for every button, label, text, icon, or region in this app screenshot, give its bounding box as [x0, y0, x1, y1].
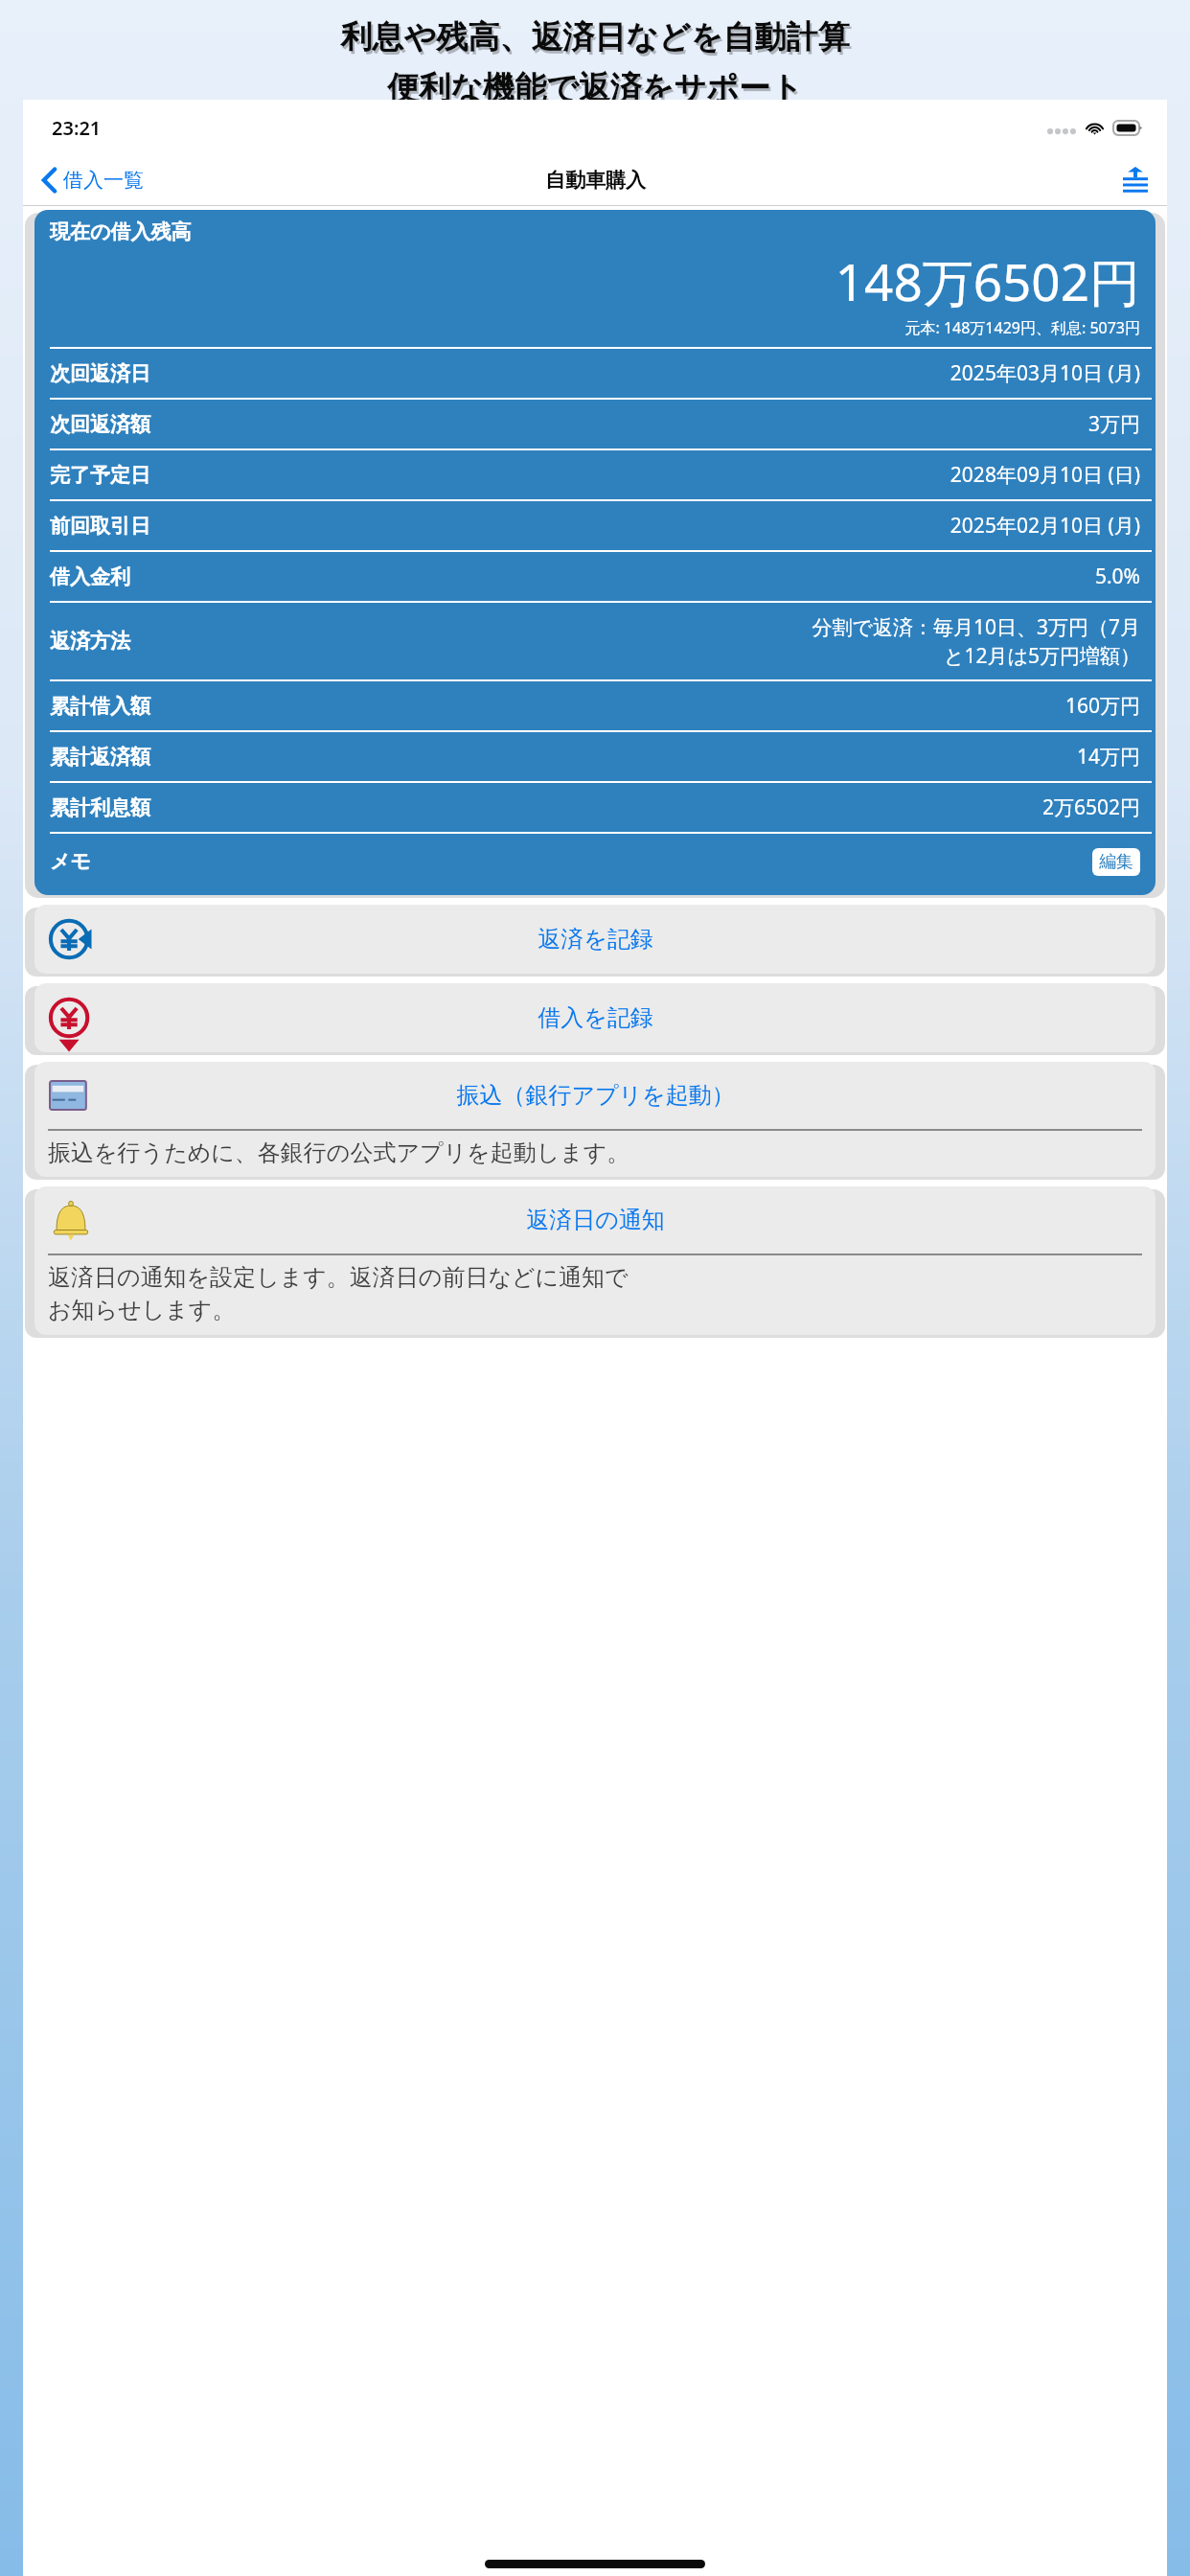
staticText: メモ [50, 849, 91, 874]
button[interactable]: 累計返済額 [34, 732, 1156, 781]
staticText: 2028年09月10日 (日) [160, 461, 1140, 489]
staticText: 編集 [1099, 851, 1133, 873]
staticText: 振込を行うために、各銀行の公式アプリを起動します。 [48, 1138, 1148, 1167]
staticText: 返済日の通知 [526, 1206, 665, 1234]
button[interactable]: 借入金利 [34, 552, 1156, 601]
staticText: 便利な機能で返済をサポート [387, 68, 803, 108]
staticText: 完了予定日 [50, 463, 150, 488]
staticText: 次回返済日 [50, 361, 150, 386]
button[interactable]: 共有 [1104, 161, 1167, 199]
staticText: 利息や残高、返済日などを自動計算 [340, 17, 850, 57]
staticText: 2025年02月10日 (月) [160, 512, 1140, 540]
button[interactable]: 借入を記録 [34, 983, 1156, 1052]
staticText: 振込（銀行アプリを起動） [456, 1081, 735, 1110]
button[interactable]: 返済日の通知 [34, 1186, 1156, 1335]
button[interactable]: 前回取引日 [34, 501, 1156, 550]
staticText: 2万6502円 [160, 793, 1140, 821]
button[interactable]: 次回返済額 [34, 400, 1156, 448]
staticText: 2025年03月10日 (月) [160, 359, 1140, 387]
button[interactable]: 返済方法 [34, 603, 1156, 679]
button[interactable]: 借入一覧 [23, 164, 151, 196]
staticText: 148万6502円 [34, 246, 1140, 315]
staticText: 借入金利 [50, 564, 130, 589]
button[interactable]: 次回返済日 [34, 349, 1156, 398]
staticText: 累計利息額 [50, 795, 150, 820]
staticText: 便利な機能で返済をサポート [389, 71, 805, 111]
staticText: 返済を記録 [538, 925, 653, 954]
button[interactable]: 累計借入額 [34, 681, 1156, 730]
button[interactable]: 現在の借入残高 [34, 210, 1156, 895]
staticText: 累計返済額 [50, 745, 150, 770]
staticText: 前回取引日 [50, 514, 150, 539]
staticText: 3万円 [160, 410, 1140, 438]
staticText: 自動車購入 [545, 168, 646, 193]
staticText: 14万円 [160, 743, 1140, 770]
staticText: 分割で返済：毎月10日、3万円（7月 と12月は5万円増額） [140, 613, 1140, 669]
button[interactable]: 完了予定日 [34, 450, 1156, 499]
staticText: 借入一覧 [63, 168, 144, 193]
button[interactable]: 振込（銀行アプリを起動） [34, 1062, 1156, 1177]
staticText: 累計借入額 [50, 694, 150, 719]
staticText: 元本: 148万1429円、利息: 5073円 [34, 317, 1140, 338]
staticText: 23:21 [52, 115, 102, 141]
staticText: 5.0% [140, 563, 1140, 590]
staticText: 160万円 [160, 692, 1140, 720]
staticText: 返済日の通知を設定します。返済日の前日などに通知で お知らせします。 [48, 1263, 1148, 1325]
staticText: 現在の借入残高 [50, 219, 192, 244]
button[interactable]: メモ [34, 834, 1156, 889]
staticText: 借入を記録 [538, 1003, 653, 1032]
button[interactable]: 累計利息額 [34, 783, 1156, 832]
staticText: 返済方法 [50, 629, 130, 654]
button[interactable]: 編集 [1092, 848, 1140, 876]
staticText: 利息や残高、返済日などを自動計算 [342, 20, 852, 60]
staticText: 次回返済額 [50, 412, 150, 437]
button[interactable]: 返済を記録 [34, 905, 1156, 974]
